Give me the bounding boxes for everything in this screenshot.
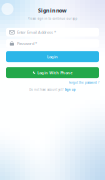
button[interactable]: Login With Phone	[6, 67, 99, 78]
staticText: Sign up	[65, 88, 76, 92]
staticText: Login With Phone	[37, 70, 72, 75]
staticText: Sign in now	[38, 7, 67, 14]
staticText: Password *	[17, 41, 37, 46]
staticText: Enter Email Address *	[17, 29, 56, 35]
staticText: Login	[47, 54, 58, 59]
button[interactable]: Login	[6, 51, 99, 62]
staticText: Please sign in to continue our app	[27, 17, 77, 20]
staticText: Do not have account yet?	[29, 88, 63, 91]
button[interactable]: Sign up	[65, 88, 76, 92]
staticText: Forgot the password ?	[69, 81, 99, 84]
button[interactable]: Forgot the password ?	[69, 81, 99, 84]
